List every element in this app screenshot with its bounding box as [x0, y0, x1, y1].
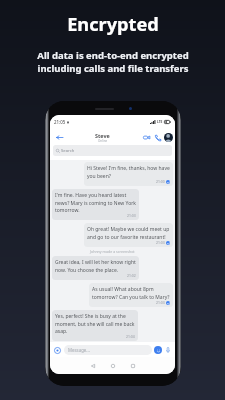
staticText: 21:00	[156, 179, 165, 184]
button[interactable]: Back	[54, 132, 64, 142]
button[interactable]: Stickers	[154, 346, 162, 354]
staticText: Yes, perfect! She is busy at the moment,…	[55, 313, 135, 334]
button[interactable]: Profile	[164, 133, 173, 142]
button[interactable]: Hi Steve! I'm fine, thanks, how have you…	[84, 162, 173, 186]
button[interactable]: Attach	[53, 346, 61, 354]
button[interactable]: Message...	[64, 345, 152, 355]
staticText: 21:05	[54, 119, 66, 125]
button[interactable]: Search	[53, 145, 172, 156]
button[interactable]: Voice message	[164, 346, 172, 354]
staticText: Online	[98, 139, 108, 143]
staticText: 21:03	[127, 213, 136, 218]
staticText: 21:03	[156, 300, 165, 305]
staticText: Great idea, I will let her know right no…	[55, 259, 136, 273]
staticText: Message...	[68, 347, 90, 353]
staticText: Encrypted	[67, 12, 159, 37]
button[interactable]: I'm fine. Have you heard latest news? Ma…	[52, 189, 139, 220]
staticText: LTE	[157, 120, 163, 124]
button[interactable]: Video call	[142, 133, 151, 142]
staticText: All data is end-to-end encrypted includi…	[37, 49, 189, 75]
staticText: I'm fine. Have you heard latest news? Ma…	[55, 192, 136, 213]
button[interactable]: Home	[106, 359, 120, 373]
staticText: Johnny made a screenshot	[90, 249, 135, 254]
button[interactable]: Great idea, I will let her know right no…	[52, 256, 139, 280]
staticText: 21:04	[126, 334, 135, 339]
staticText: 21:03	[156, 240, 165, 245]
staticText: Oh great! Maybe we could meet up and go …	[87, 226, 170, 240]
button[interactable]: As usual! What about 8pm tomorrow? Can y…	[89, 283, 173, 307]
staticText: As usual! What about 8pm tomorrow? Can y…	[92, 286, 170, 300]
button[interactable]: Call	[153, 133, 162, 142]
staticText: Hi Steve! I'm fine, thanks, how have you…	[87, 165, 170, 179]
staticText: 21:02	[127, 273, 136, 278]
button[interactable]: Recents	[126, 359, 140, 373]
button[interactable]: Oh great! Maybe we could meet up and go …	[84, 223, 173, 247]
staticText: Steve	[95, 132, 110, 139]
button[interactable]: Steve	[95, 132, 110, 143]
button[interactable]: Yes, perfect! She is busy at the moment,…	[52, 310, 138, 341]
staticText: Search	[61, 148, 75, 154]
button[interactable]: Back	[86, 359, 100, 373]
